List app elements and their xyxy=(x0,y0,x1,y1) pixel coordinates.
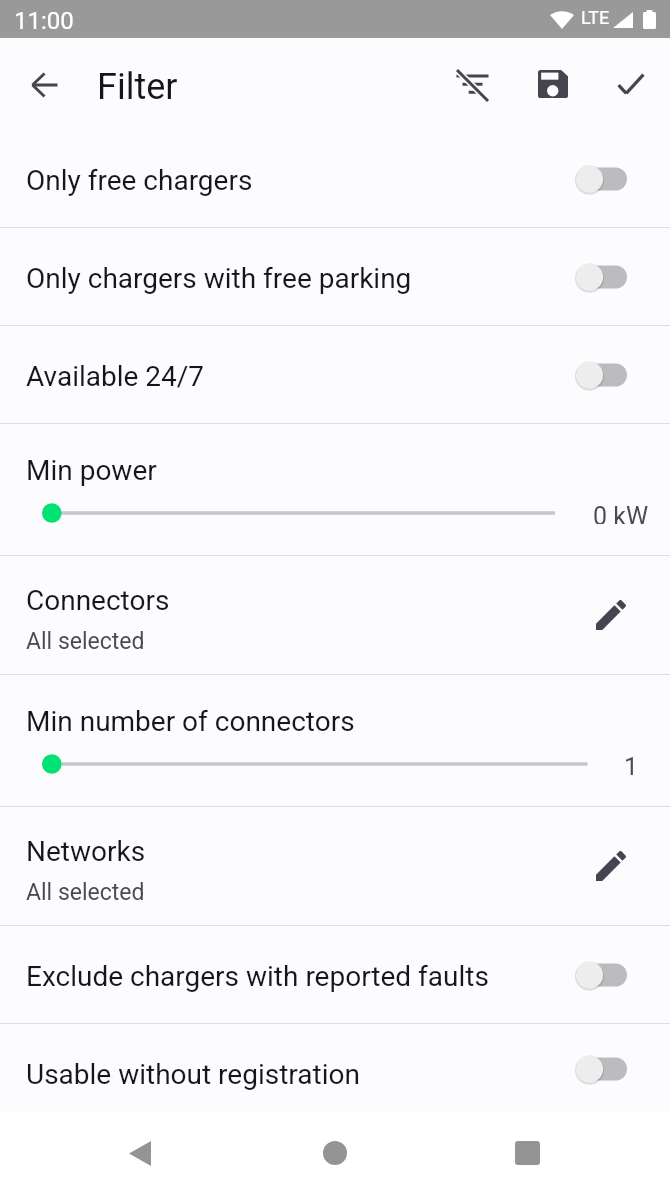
staticText: 1 xyxy=(624,753,639,775)
button[interactable]: Edit Connectors xyxy=(581,585,641,645)
button[interactable]: Only chargers with free parking xyxy=(0,228,670,325)
staticText: Available 24/7 xyxy=(26,360,575,393)
button[interactable]: Available 24/7 xyxy=(0,326,670,423)
button[interactable]: Available 24/7 toggle, off xyxy=(575,360,627,390)
staticText: All selected xyxy=(26,879,145,906)
button[interactable]: Connectors xyxy=(0,556,670,674)
staticText: Min power xyxy=(26,454,157,487)
button[interactable]: Networks xyxy=(0,807,670,925)
button[interactable]: Only free chargers xyxy=(0,130,670,227)
staticText: 11:00 xyxy=(14,7,74,35)
button[interactable]: Navigate up xyxy=(12,52,77,117)
button[interactable]: Exclude chargers with reported faults to… xyxy=(575,960,627,990)
staticText: Only chargers with free parking xyxy=(26,262,575,295)
button[interactable]: Exclude chargers with reported faults xyxy=(0,926,670,1023)
button[interactable]: Usable without registration xyxy=(0,1024,670,1113)
button[interactable]: Recent apps xyxy=(493,1119,561,1187)
button[interactable]: Only chargers with free parking toggle, … xyxy=(575,262,627,292)
staticText: Connectors xyxy=(26,584,170,617)
staticText: Usable without registration xyxy=(26,1058,575,1091)
button[interactable]: Clear filters xyxy=(436,45,514,123)
staticText: 0 kW xyxy=(593,502,649,524)
staticText: Filter xyxy=(97,66,178,108)
button[interactable]: Usable without registration toggle, off xyxy=(575,1054,627,1084)
button[interactable]: Apply filter xyxy=(592,45,670,123)
button[interactable]: Back xyxy=(106,1119,174,1187)
staticText: Only free chargers xyxy=(26,164,575,197)
staticText: Min number of connectors xyxy=(26,705,355,738)
staticText: All selected xyxy=(26,628,145,655)
button[interactable]: Edit Networks xyxy=(581,836,641,896)
button[interactable]: Only free chargers toggle, off xyxy=(575,164,627,194)
staticText: LTE xyxy=(581,7,610,28)
button[interactable]: Min power xyxy=(0,424,670,555)
button[interactable]: Min number of connectors xyxy=(0,675,670,806)
staticText: Networks xyxy=(26,835,146,868)
button[interactable]: Save filter xyxy=(514,45,592,123)
staticText: Exclude chargers with reported faults xyxy=(26,960,575,993)
button[interactable]: Home xyxy=(301,1119,369,1187)
